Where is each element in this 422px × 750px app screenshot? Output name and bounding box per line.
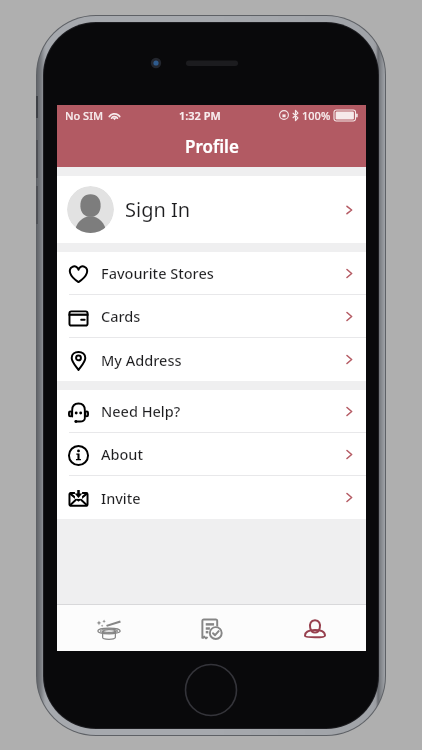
- button[interactable]: About: [57, 433, 366, 475]
- button[interactable]: Magic: [57, 605, 160, 651]
- button[interactable]: My Address: [57, 338, 366, 381]
- staticText: 1:32 PM: [179, 108, 221, 123]
- staticText: Cards: [101, 306, 141, 326]
- staticText: Invite: [101, 488, 141, 508]
- button[interactable]: Need Help?: [57, 390, 366, 432]
- staticText: Profile: [185, 135, 239, 158]
- button[interactable]: Cards: [57, 295, 366, 337]
- staticText: No SIM: [65, 108, 104, 123]
- staticText: Need Help?: [101, 401, 181, 421]
- button[interactable]: Invite: [57, 476, 366, 519]
- staticText: Favourite Stores: [101, 263, 214, 283]
- staticText: About: [101, 444, 143, 464]
- button[interactable]: Profile: [263, 605, 366, 651]
- staticText: Sign In: [125, 196, 191, 223]
- button[interactable]: Orders: [160, 605, 263, 651]
- staticText: 100%: [302, 108, 331, 123]
- staticText: My Address: [101, 350, 182, 370]
- button[interactable]: Sign In: [57, 176, 366, 243]
- button[interactable]: Favourite Stores: [57, 252, 366, 294]
